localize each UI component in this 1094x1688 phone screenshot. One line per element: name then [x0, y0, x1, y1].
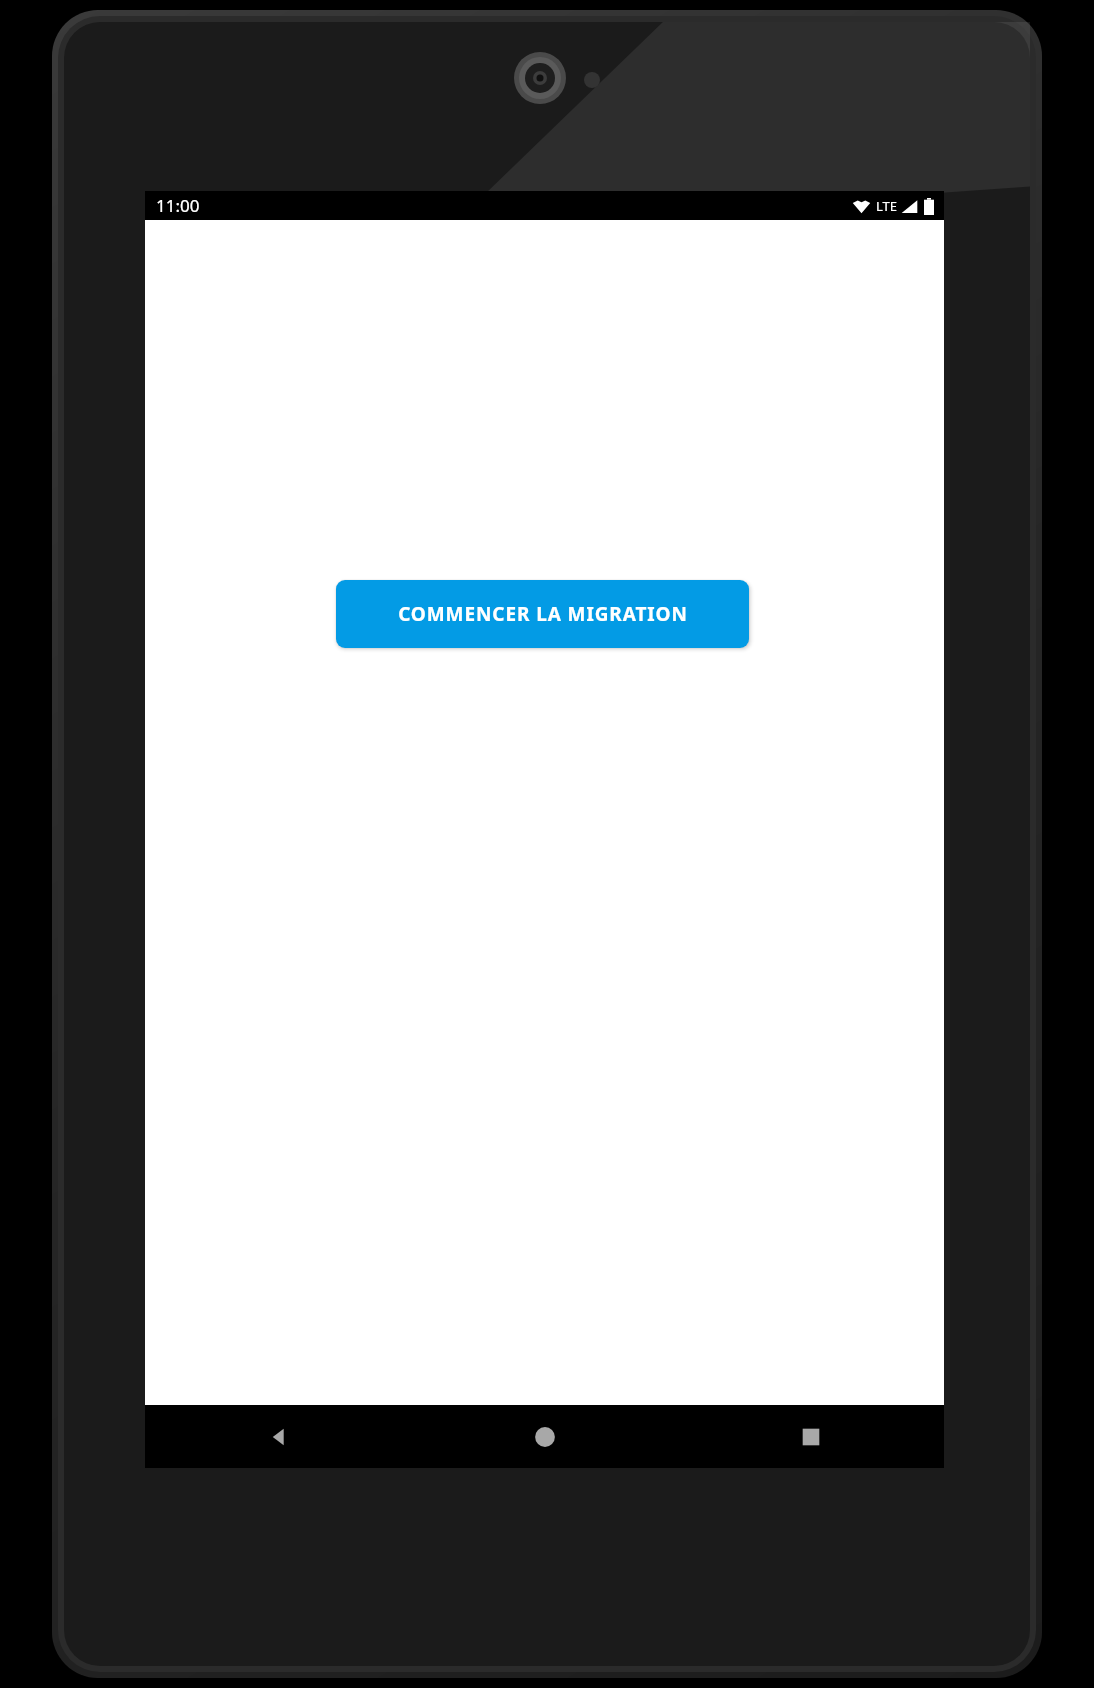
staticText: 11:00	[156, 194, 200, 217]
staticText: LTE	[876, 197, 898, 215]
staticText: COMMENCER LA MIGRATION	[398, 601, 688, 627]
button[interactable]: Home	[412, 1405, 678, 1468]
button[interactable]: Recent apps	[678, 1405, 944, 1468]
button[interactable]: COMMENCER LA MIGRATION	[336, 580, 749, 648]
button[interactable]: Back	[145, 1405, 412, 1468]
